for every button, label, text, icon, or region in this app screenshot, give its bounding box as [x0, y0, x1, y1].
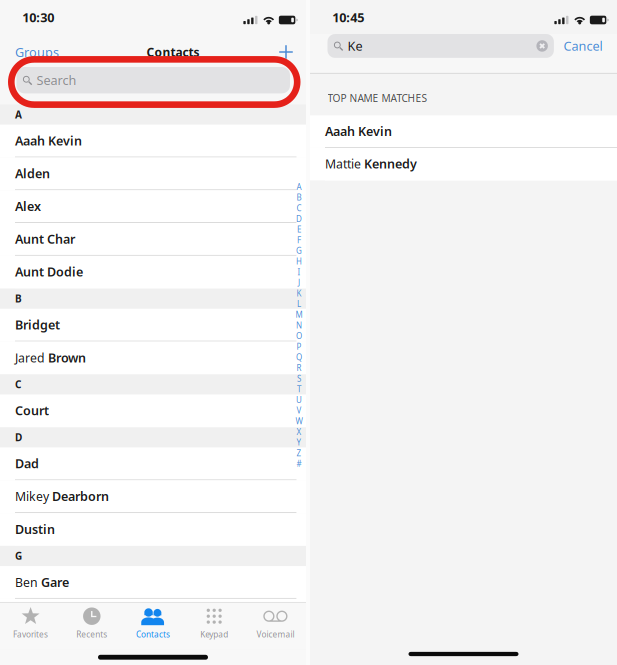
- button[interactable]: Aaah Kevin: [310, 115, 617, 148]
- staticText: Favorites: [13, 629, 48, 640]
- staticText: X: [296, 426, 301, 437]
- button[interactable]: Aunt Dodie: [0, 256, 306, 289]
- staticText: Alex: [15, 198, 41, 214]
- button[interactable]: Bridget: [0, 309, 306, 342]
- staticText: Ke: [347, 37, 362, 55]
- staticText: Aunt Dodie: [15, 263, 83, 280]
- staticText: Jared Brown: [15, 349, 86, 366]
- button[interactable]: Mikey Dearborn: [0, 480, 306, 513]
- button[interactable]: Mattie Kennedy: [310, 148, 617, 180]
- staticText: Recents: [76, 629, 107, 640]
- staticText: Q: [296, 352, 302, 363]
- staticText: D: [15, 431, 22, 444]
- staticText: Dustin: [15, 521, 55, 537]
- staticText: C: [296, 203, 301, 214]
- staticText: O: [296, 330, 302, 341]
- button[interactable]: Aunt Char: [0, 223, 306, 256]
- staticText: Aunt Char: [15, 231, 75, 247]
- button[interactable]: Add contact: [279, 41, 306, 63]
- staticText: Keypad: [200, 629, 228, 640]
- staticText: Cancel: [563, 37, 602, 55]
- staticText: Groups: [15, 43, 59, 61]
- staticText: Y: [296, 437, 301, 448]
- button[interactable]: Search: [16, 67, 290, 93]
- staticText: #: [296, 458, 301, 469]
- staticText: E: [297, 224, 301, 235]
- staticText: V: [296, 405, 301, 416]
- staticText: H: [296, 256, 302, 267]
- staticText: Z: [296, 448, 301, 458]
- staticText: R: [296, 362, 301, 373]
- staticText: 10:45: [332, 9, 364, 26]
- staticText: Search: [36, 72, 76, 89]
- button[interactable]: Recents: [61, 603, 122, 650]
- staticText: B: [296, 192, 301, 203]
- staticText: Court: [15, 402, 49, 419]
- staticText: G: [15, 549, 22, 563]
- staticText: Bridget: [15, 316, 60, 333]
- button[interactable]: Court: [0, 395, 306, 427]
- staticText: Dad: [15, 455, 39, 472]
- button[interactable]: Alden: [0, 157, 306, 190]
- staticText: Voicemail: [256, 629, 294, 640]
- staticText: B: [15, 292, 22, 305]
- staticText: I: [297, 267, 300, 277]
- staticText: A: [296, 181, 301, 192]
- staticText: F: [297, 235, 301, 245]
- staticText: K: [296, 288, 301, 299]
- staticText: TOP NAME MATCHES: [327, 91, 427, 105]
- staticText: L: [297, 298, 301, 309]
- button[interactable]: Jared Brown: [0, 342, 306, 374]
- button[interactable]: Cancel: [563, 34, 602, 58]
- button[interactable]: Dad: [0, 447, 306, 480]
- button[interactable]: Contacts: [122, 603, 184, 650]
- staticText: P: [296, 341, 301, 352]
- button[interactable]: Keypad: [184, 603, 245, 650]
- staticText: J: [298, 277, 300, 288]
- button[interactable]: Ben Gare: [0, 566, 306, 599]
- staticText: W: [295, 416, 302, 427]
- button[interactable]: Dustin: [0, 513, 306, 546]
- staticText: N: [296, 320, 302, 331]
- staticText: 10:30: [22, 9, 54, 26]
- staticText: Mikey Dearborn: [15, 488, 109, 504]
- button[interactable]: Favorites: [0, 603, 61, 650]
- staticText: Alden: [15, 165, 50, 182]
- staticText: Contacts: [136, 629, 170, 640]
- staticText: S: [297, 373, 301, 384]
- staticText: D: [296, 213, 302, 224]
- staticText: M: [295, 309, 302, 320]
- button[interactable]: Groups: [0, 41, 67, 63]
- staticText: Ben Gare: [15, 574, 69, 590]
- staticText: Mattie Kennedy: [325, 155, 417, 172]
- staticText: T: [297, 384, 301, 395]
- staticText: U: [296, 394, 302, 405]
- staticText: A: [15, 108, 22, 121]
- button[interactable]: Voicemail: [245, 603, 306, 650]
- staticText: Aaah Kevin: [325, 123, 392, 139]
- staticText: Contacts: [146, 44, 199, 60]
- staticText: C: [15, 378, 21, 391]
- button[interactable]: Aaah Kevin: [0, 125, 306, 157]
- staticText: Aaah Kevin: [15, 132, 82, 149]
- staticText: G: [296, 245, 302, 256]
- button[interactable]: Alex: [0, 190, 306, 223]
